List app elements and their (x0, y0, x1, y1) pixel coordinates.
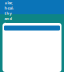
staticText: Regular, healthy and happy life (4, 0, 14, 32)
